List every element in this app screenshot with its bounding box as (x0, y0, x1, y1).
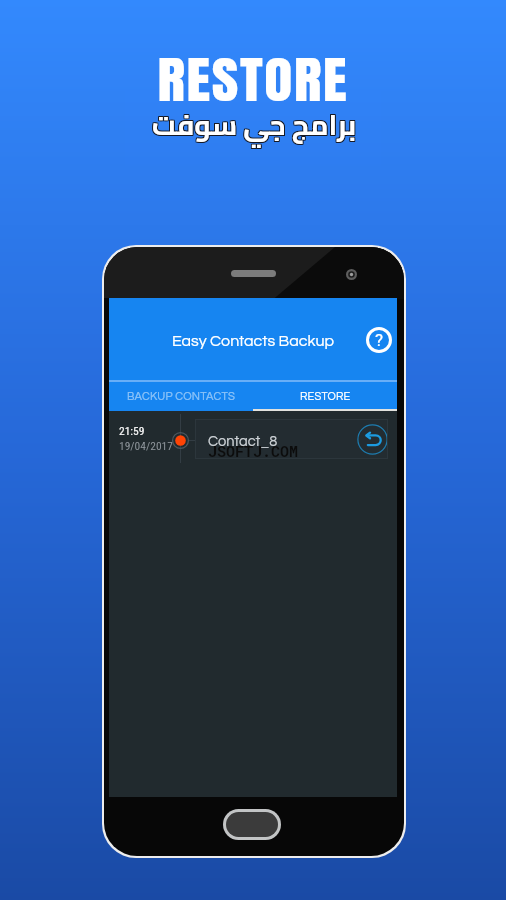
staticText: برامج جي سوفت (153, 100, 358, 152)
staticText: ? (375, 330, 384, 350)
staticText: برامج جي سوفت (152, 98, 357, 150)
staticText: 19/04/2017 (119, 439, 173, 452)
staticText: JSOFTJ.COM (208, 441, 299, 461)
staticText: RESTORE (300, 391, 351, 402)
button[interactable]: Help (362, 323, 396, 357)
staticText: برامج جي سوفت (152, 100, 357, 152)
button[interactable]: BACKUP CONTACTS (109, 382, 253, 411)
staticText: Contact_8 (208, 434, 278, 449)
staticText: برامج جي سوفت (151, 98, 356, 150)
button[interactable]: RESTORE (253, 382, 397, 411)
staticText: برامج جي سوفت (152, 99, 357, 151)
button[interactable]: Restore (356, 423, 388, 455)
staticText: 21:59 (119, 424, 145, 437)
staticText: BACKUP CONTACTS (127, 391, 236, 403)
staticText: Easy Contacts Backup (172, 333, 335, 349)
staticText: RESTORE (158, 42, 348, 117)
staticText: برامج جي سوفت (153, 99, 358, 151)
button[interactable]: Home (223, 809, 281, 840)
staticText: برامج جي سوفت (153, 98, 358, 150)
button[interactable]: Contact_8 (195, 419, 388, 459)
staticText: برامج جي سوفت (151, 100, 356, 152)
staticText: برامج جي سوفت (151, 99, 356, 151)
